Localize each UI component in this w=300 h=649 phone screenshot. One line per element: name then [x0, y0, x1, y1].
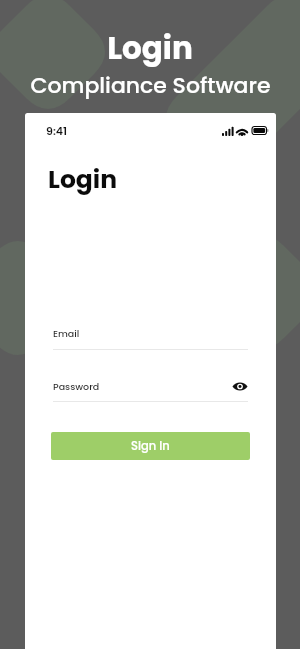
- staticText: Email: [53, 327, 80, 340]
- staticText: Login: [107, 26, 193, 69]
- staticText: Password: [53, 380, 100, 393]
- button[interactable]: Sign In: [51, 432, 250, 460]
- staticText: Login: [48, 162, 118, 197]
- staticText: Compliance Software: [30, 70, 271, 101]
- staticText: Sign In: [131, 438, 170, 454]
- button[interactable]: Show password: [232, 378, 248, 394]
- button[interactable]: Email: [53, 327, 248, 350]
- staticText: 9:41: [46, 123, 68, 138]
